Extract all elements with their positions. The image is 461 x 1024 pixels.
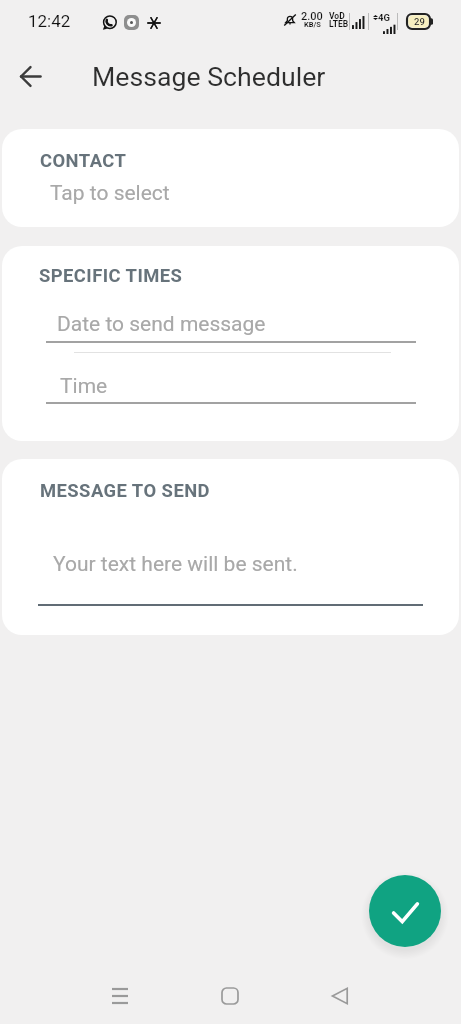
staticText: SPECIFIC TIMES — [39, 265, 183, 287]
button[interactable]: CONTACT — [2, 129, 459, 227]
staticText: 2.00 — [301, 10, 323, 23]
staticText: Your text here will be sent. — [53, 552, 298, 577]
staticText: Message Scheduler — [92, 61, 326, 92]
button[interactable]: Back — [316, 972, 364, 1020]
button[interactable]: Back — [7, 52, 55, 100]
button[interactable]: Time — [43, 374, 417, 414]
button[interactable]: Date to send message — [43, 312, 417, 352]
staticText: LTEB — [329, 19, 349, 29]
staticText: MESSAGE TO SEND — [40, 480, 210, 502]
staticText: Time — [60, 374, 108, 399]
button[interactable]: Save — [369, 875, 441, 947]
button[interactable]: Home — [206, 972, 254, 1020]
staticText: CONTACT — [40, 150, 127, 172]
staticText: VoD — [329, 11, 345, 21]
staticText: 4G — [378, 12, 390, 23]
staticText: 29 — [414, 16, 425, 27]
staticText: Date to send message — [57, 312, 266, 337]
button[interactable]: Recent apps — [96, 972, 144, 1020]
staticText: 12:42 — [28, 11, 71, 31]
staticText: KB/S — [304, 20, 321, 29]
staticText: Tap to select — [50, 181, 170, 206]
button[interactable]: Your text here will be sent. — [38, 552, 425, 614]
